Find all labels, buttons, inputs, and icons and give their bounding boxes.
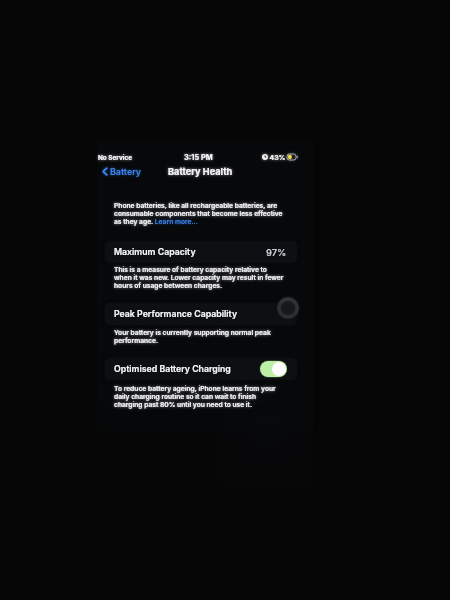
- staticText: Battery Health: [168, 166, 233, 177]
- staticText: Battery: [110, 166, 142, 177]
- staticText: Optimised Battery Charging: [114, 364, 231, 375]
- staticText: Peak Performance Capability: [114, 309, 238, 320]
- staticText: Your battery is currently supporting nor…: [114, 329, 286, 345]
- button[interactable]: Battery: [102, 166, 142, 177]
- staticText: To reduce battery ageing, iPhone learns …: [114, 385, 286, 409]
- staticText: Battery: [110, 166, 142, 177]
- button[interactable]: Peak Performance Capability: [105, 303, 297, 325]
- staticText: Optimised Battery Charging: [114, 364, 231, 375]
- button[interactable]: Optimised Battery Charging: [105, 358, 297, 380]
- staticText: 43%: [268, 153, 286, 161]
- button[interactable]: Maximum Capacity: [105, 241, 297, 263]
- button[interactable]: Optimised Battery Charging toggle: [259, 360, 287, 378]
- staticText: Your battery is currently supporting nor…: [114, 329, 286, 345]
- button[interactable]: Maximum Capacity: [105, 241, 297, 263]
- staticText: Peak Performance Capability: [114, 309, 238, 320]
- staticText: No Service: [98, 154, 133, 162]
- staticText: 43%: [268, 153, 286, 161]
- staticText: Maximum Capacity: [114, 247, 196, 258]
- staticText: 97%: [266, 247, 287, 258]
- staticText: Phone batteries, like all rechargeable b…: [114, 202, 286, 226]
- staticText: No Service: [98, 154, 133, 162]
- button[interactable]: Peak Performance Capability: [105, 303, 297, 325]
- staticText: This is a measure of battery capacity re…: [114, 266, 286, 290]
- button[interactable]: Optimised Battery Charging: [105, 358, 297, 380]
- staticText: Maximum Capacity: [114, 247, 196, 258]
- staticText: Phone batteries, like all rechargeable b…: [114, 202, 286, 226]
- staticText: 3:15 PM: [184, 153, 213, 162]
- button[interactable]: Optimised Battery Charging toggle: [259, 360, 287, 378]
- button[interactable]: Battery: [102, 166, 142, 177]
- staticText: 97%: [266, 247, 287, 258]
- staticText: This is a measure of battery capacity re…: [114, 266, 286, 290]
- staticText: To reduce battery ageing, iPhone learns …: [114, 385, 286, 409]
- staticText: 3:15 PM: [184, 153, 213, 162]
- staticText: Battery Health: [168, 166, 233, 177]
